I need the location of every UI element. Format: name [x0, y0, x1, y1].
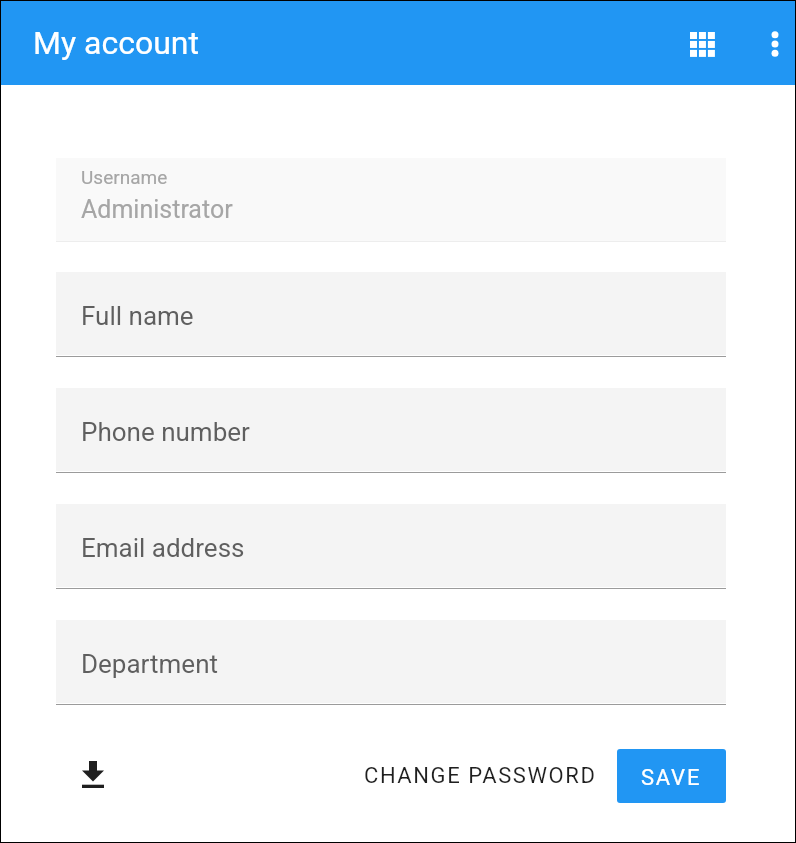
staticText: Email address	[81, 533, 245, 563]
button[interactable]: Username	[56, 158, 726, 241]
staticText: SAVE	[641, 765, 702, 791]
button[interactable]: Apps	[676, 18, 728, 70]
button[interactable]: Phone number	[56, 388, 726, 471]
staticText: CHANGE PASSWORD	[364, 763, 597, 789]
staticText: Phone number	[81, 417, 250, 447]
staticText: Department	[81, 649, 218, 679]
button[interactable]: Full name	[56, 272, 726, 355]
button[interactable]: Email address	[56, 504, 726, 587]
staticText: Full name	[81, 301, 194, 331]
staticText: Administrator	[81, 195, 233, 224]
button[interactable]: Department	[56, 620, 726, 703]
button[interactable]: CHANGE PASSWORD	[348, 749, 613, 803]
staticText: Username	[81, 166, 168, 188]
button[interactable]: SAVE	[617, 749, 726, 803]
button[interactable]: More options	[749, 18, 796, 70]
staticText: My account	[33, 24, 199, 62]
button[interactable]: Download	[66, 747, 120, 801]
